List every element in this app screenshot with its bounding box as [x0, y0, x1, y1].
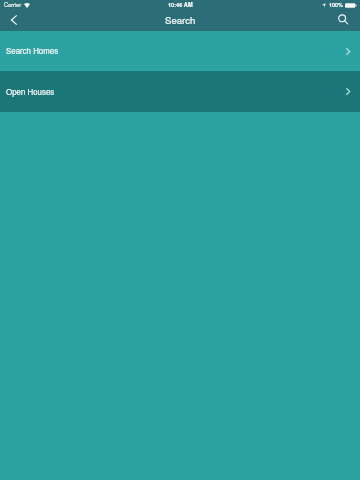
button[interactable]: Search Homes [0, 31, 360, 71]
staticText: Carrier [4, 1, 22, 9]
staticText: Search [165, 13, 196, 27]
staticText: Search Homes [6, 45, 59, 56]
staticText: Open Houses [6, 86, 55, 97]
staticText: 100% [329, 1, 343, 9]
button[interactable]: Search [330, 10, 360, 31]
button[interactable]: Open Houses [0, 71, 360, 112]
button[interactable]: Back [0, 10, 28, 31]
staticText: 10:46 AM [168, 1, 193, 9]
